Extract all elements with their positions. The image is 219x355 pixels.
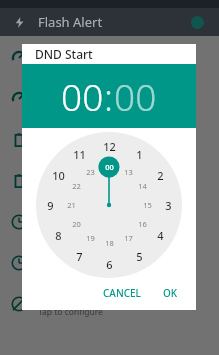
staticText: 5 bbox=[136, 249, 143, 264]
staticText: 1 bbox=[136, 147, 143, 162]
staticText: Battery percentage bbox=[38, 174, 138, 189]
staticText: Do not disturb bbox=[38, 209, 113, 224]
staticText: 10 bbox=[52, 168, 65, 183]
staticText: DND Start bbox=[35, 46, 93, 62]
staticText: 9 bbox=[47, 198, 54, 213]
button[interactable]: DND Start 00:00 bbox=[0, 244, 219, 282]
staticText: Tap to configure bbox=[38, 60, 103, 72]
staticText: 16 bbox=[138, 219, 147, 229]
staticText: 11 bbox=[73, 147, 86, 162]
staticText: 15 bbox=[143, 200, 152, 210]
button[interactable]: Battery percentage bbox=[0, 162, 219, 200]
staticText: 22 bbox=[72, 181, 81, 191]
staticText: 7 bbox=[76, 249, 83, 264]
staticText: 8 bbox=[55, 228, 62, 243]
staticText: 17 bbox=[124, 233, 133, 243]
button[interactable]: Flash bbox=[10, 13, 28, 31]
staticText: 4 bbox=[157, 228, 164, 243]
button[interactable]: 00 bbox=[114, 71, 157, 121]
button[interactable]: Advanced bbox=[0, 80, 219, 118]
button[interactable]: Do not disturb bbox=[0, 200, 219, 244]
button[interactable]: 12 bbox=[35, 132, 183, 278]
button[interactable]: Disable on low battery bbox=[0, 118, 219, 162]
staticText: 19 bbox=[86, 233, 95, 243]
staticText: Flash Alert bbox=[38, 13, 103, 31]
button[interactable]: Toggle Flash Alert bbox=[187, 12, 207, 32]
staticText: Tap to configure bbox=[38, 142, 103, 154]
staticText: CANCEL bbox=[103, 286, 141, 300]
staticText: 20 bbox=[72, 219, 81, 229]
staticText: 2 bbox=[157, 168, 164, 183]
button[interactable]: 00 bbox=[61, 71, 104, 121]
staticText: 21 bbox=[67, 200, 76, 210]
staticText: 14 bbox=[138, 181, 147, 191]
staticText: 23 bbox=[86, 167, 95, 177]
button[interactable]: CANCEL bbox=[97, 282, 147, 304]
button[interactable]: OK bbox=[157, 282, 184, 304]
staticText: Tap to configure bbox=[38, 306, 103, 318]
staticText: : bbox=[104, 71, 114, 121]
staticText: Advanced option bbox=[38, 45, 126, 60]
staticText: 12 bbox=[103, 139, 116, 154]
staticText: 6 bbox=[106, 257, 113, 272]
staticText: Advanced bbox=[38, 92, 89, 107]
staticText: DND End 00:00 bbox=[38, 291, 116, 306]
staticText: Tap to configure bbox=[38, 224, 103, 236]
staticText: Disable on low battery bbox=[38, 127, 154, 142]
staticText: 13 bbox=[124, 167, 133, 177]
staticText: DND Start 00:00 bbox=[38, 256, 121, 271]
staticText: 3 bbox=[165, 198, 172, 213]
button[interactable]: DND End 00:00 bbox=[0, 282, 219, 326]
button[interactable]: Advanced option bbox=[0, 36, 219, 80]
staticText: 00 bbox=[105, 162, 114, 172]
staticText: OK bbox=[163, 286, 178, 300]
staticText: 18 bbox=[105, 238, 114, 248]
